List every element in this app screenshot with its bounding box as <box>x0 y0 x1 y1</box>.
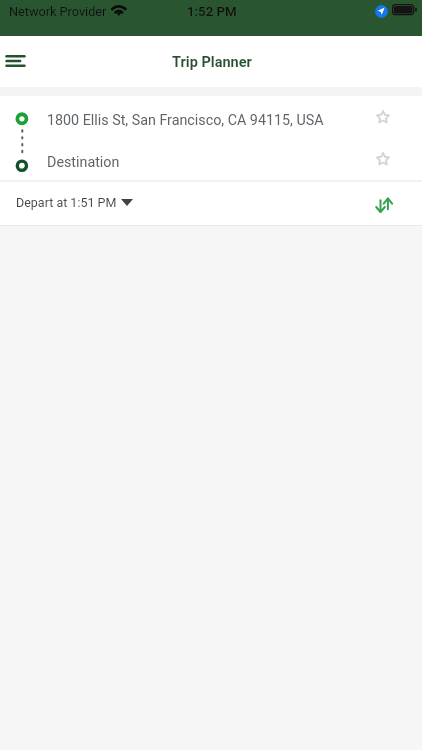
button[interactable]: Save as favourite <box>352 138 398 180</box>
button[interactable]: Open navigation menu <box>0 36 32 87</box>
staticText: 1:52 PM <box>187 4 237 20</box>
staticText: Trip Planner <box>172 54 252 71</box>
button[interactable]: Destination <box>0 138 422 180</box>
staticText: Destination <box>47 154 120 171</box>
button[interactable]: Swap origin and destination <box>374 182 422 225</box>
staticText: Network Provider <box>9 4 107 19</box>
staticText: 1800 Ellis St, San Francisco, CA 94115, … <box>47 112 324 129</box>
button[interactable]: Save as favourite <box>352 96 398 138</box>
button[interactable]: Depart at 1:51 PM <box>0 187 143 218</box>
staticText: Depart at 1:51 PM <box>16 195 117 210</box>
button[interactable]: 1800 Ellis St, San Francisco, CA 94115, … <box>0 96 422 138</box>
